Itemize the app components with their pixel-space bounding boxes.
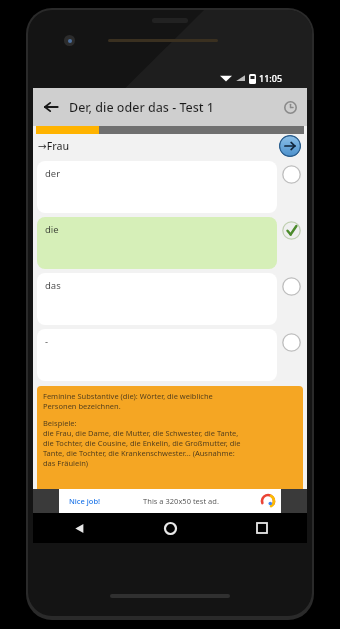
button[interactable]: das <box>37 273 303 325</box>
staticText: Der, die oder das - Test 1 <box>69 99 214 116</box>
button[interactable]: Home <box>125 513 216 543</box>
button[interactable]: Nice job! <box>59 489 281 513</box>
button[interactable]: Recents <box>216 513 307 543</box>
staticText: →Frau <box>38 139 70 153</box>
staticText: Beispiele: <box>43 418 77 428</box>
staticText: 11:05 <box>259 72 283 84</box>
staticText: die <box>45 223 59 236</box>
button[interactable]: Next question <box>279 135 301 157</box>
staticText: This a 320x50 test ad. <box>143 496 219 506</box>
staticText: die Frau, die Dame, die Mutter, die Schw… <box>43 428 241 468</box>
button[interactable]: - <box>37 329 303 381</box>
staticText: der <box>45 167 61 180</box>
staticText: Nice job! <box>69 496 101 506</box>
button[interactable]: History <box>273 88 307 126</box>
button[interactable]: der <box>37 161 303 213</box>
staticText: - <box>45 335 49 348</box>
button[interactable]: die <box>37 217 303 269</box>
button[interactable]: Feminine Substantive (die): Wörter, die … <box>37 386 303 494</box>
staticText: das <box>45 279 61 292</box>
staticText: Feminine Substantive (die): Wörter, die … <box>43 391 213 411</box>
button[interactable]: Back <box>33 513 125 543</box>
button[interactable]: Back <box>33 88 69 126</box>
